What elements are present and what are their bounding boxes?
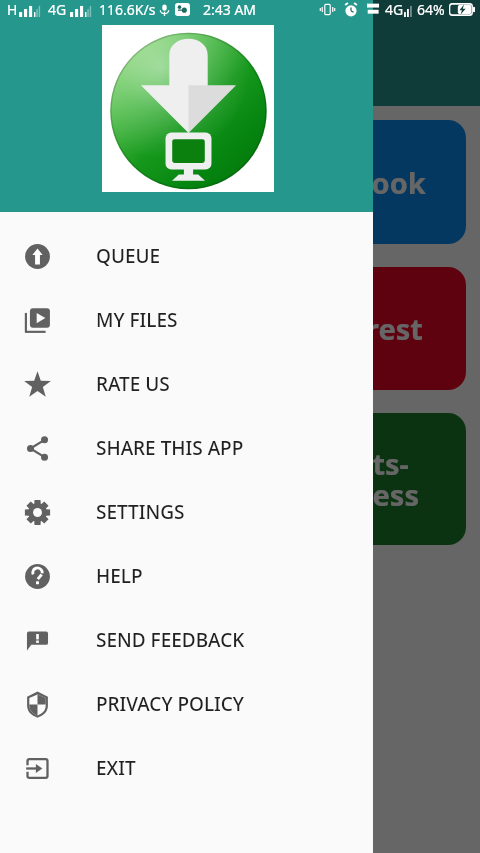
- staticText: H: [7, 0, 18, 19]
- button[interactable]: SEND FEEDBACK: [0, 608, 373, 672]
- staticText: 4G: [48, 0, 67, 19]
- staticText: EXIT: [96, 755, 136, 781]
- staticText: HELP: [96, 563, 143, 589]
- button[interactable]: App logo: [102, 25, 274, 192]
- staticText: 2:43 AM: [203, 0, 257, 19]
- button[interactable]: Downloader for Facebook: [14, 120, 466, 244]
- button[interactable]: RATE US: [0, 352, 373, 416]
- staticText: SEND FEEDBACK: [96, 627, 245, 653]
- staticText: 4G: [385, 0, 404, 19]
- staticText: MY FILES: [96, 307, 178, 333]
- staticText: Status Saver for Whats- Downloads App Bu…: [61, 444, 419, 515]
- staticText: 116.6K/s: [99, 0, 156, 19]
- button[interactable]: QUEUE: [0, 224, 373, 288]
- button[interactable]: PRIVACY POLICY: [0, 672, 373, 736]
- button[interactable]: SETTINGS: [0, 480, 373, 544]
- staticText: Downloader for Facebook: [55, 163, 426, 202]
- button[interactable]: Status Saver for Whats- Downloads App Bu…: [14, 413, 466, 545]
- staticText: Downloader for Pinterest: [58, 309, 423, 348]
- staticText: SHARE THIS APP: [96, 435, 244, 461]
- button[interactable]: EXIT: [0, 736, 373, 800]
- button[interactable]: SHARE THIS APP: [0, 416, 373, 480]
- button[interactable]: MY FILES: [0, 288, 373, 352]
- staticText: PRIVACY POLICY: [96, 691, 244, 717]
- button[interactable]: Downloader for Pinterest: [14, 267, 466, 390]
- button[interactable]: HELP: [0, 544, 373, 608]
- staticText: QUEUE: [96, 243, 161, 269]
- staticText: SETTINGS: [96, 499, 185, 525]
- button[interactable]: Close navigation drawer: [0, 0, 480, 853]
- staticText: RATE US: [96, 371, 170, 397]
- staticText: 64%: [417, 0, 445, 19]
